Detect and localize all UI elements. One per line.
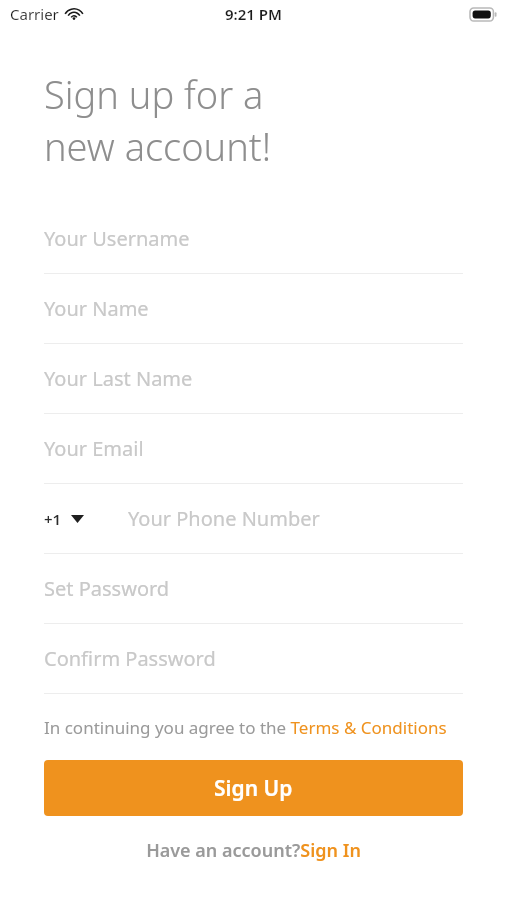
- staticText: Have an account?Sign In: [146, 838, 361, 863]
- staticText: In continuing you agree to the Terms & C…: [44, 716, 447, 739]
- staticText: Your Name: [44, 295, 149, 322]
- button[interactable]: Set Password: [0, 554, 507, 624]
- staticText: Your Email: [44, 435, 144, 462]
- button[interactable]: Your Email: [0, 414, 507, 484]
- staticText: Your Last Name: [44, 365, 193, 392]
- button[interactable]: Sign Up: [44, 760, 463, 816]
- staticText: +1: [44, 509, 62, 529]
- button[interactable]: Your Phone Number: [128, 505, 463, 532]
- button[interactable]: In continuing you agree to the Terms & C…: [0, 716, 507, 739]
- button[interactable]: Confirm Password: [0, 624, 507, 694]
- staticText: Set Password: [44, 575, 170, 602]
- staticText: Confirm Password: [44, 645, 216, 672]
- staticText: Carrier: [10, 4, 59, 24]
- staticText: Sign Up: [214, 774, 293, 803]
- button[interactable]: Select country code: [44, 509, 84, 529]
- staticText: new account!: [44, 120, 272, 172]
- staticText: 9:21 PM: [225, 4, 282, 24]
- button[interactable]: Your Last Name: [0, 344, 507, 414]
- button[interactable]: Your Username: [0, 204, 507, 274]
- button[interactable]: Your Name: [0, 274, 507, 344]
- staticText: Your Phone Number: [128, 505, 320, 532]
- staticText: Your Username: [44, 225, 190, 252]
- button[interactable]: Have an account?Sign In: [0, 838, 507, 863]
- staticText: Sign up for a: [44, 68, 264, 120]
